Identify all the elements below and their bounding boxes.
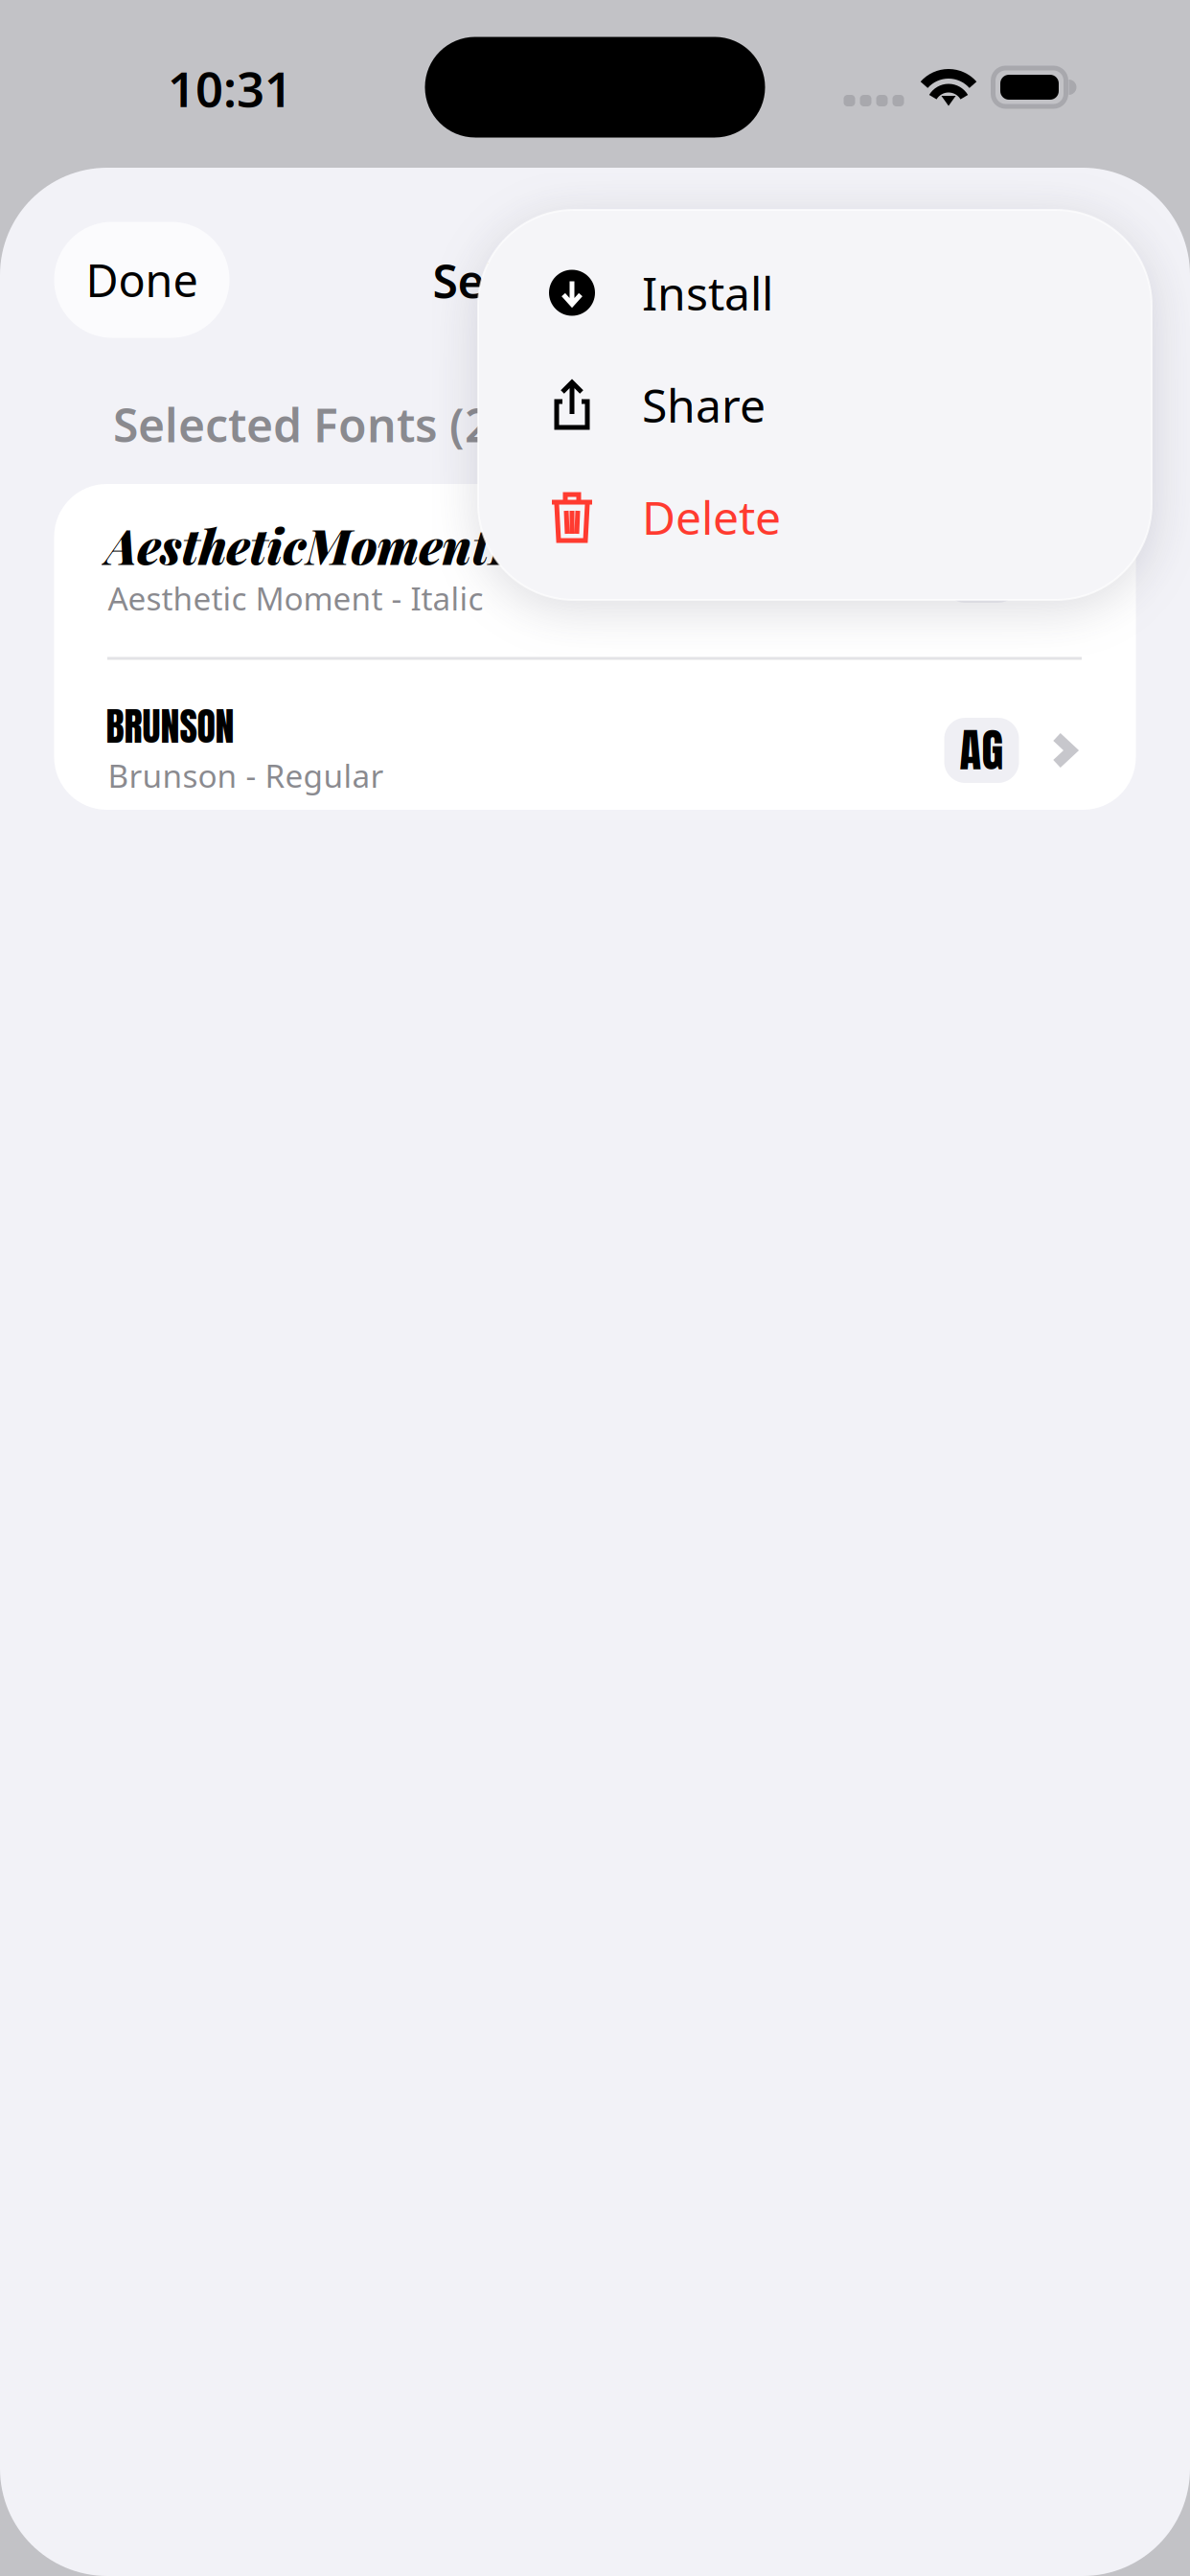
staticText: Done (86, 250, 198, 310)
button[interactable]: BRUNSON (54, 658, 1136, 810)
staticText: Aesthetic Moment - Italic (108, 577, 483, 619)
staticText: AestheticMomentItalic (106, 514, 609, 577)
staticText: AG (960, 537, 1004, 604)
button[interactable]: Done (54, 222, 229, 338)
staticText: Selected Fonts (2) (113, 394, 506, 455)
staticText: 10:31 (168, 56, 292, 120)
button[interactable]: Delete (478, 461, 1152, 573)
staticText: Selected Fonts (433, 250, 757, 311)
staticText: AG (960, 717, 1004, 784)
staticText: Delete (642, 486, 781, 547)
staticText: Install (642, 262, 773, 323)
button[interactable]: AestheticMomentItalic (54, 484, 1136, 658)
button[interactable]: Install (478, 237, 1152, 349)
staticText: BRUNSON (106, 698, 234, 755)
staticText: Share (642, 374, 766, 435)
staticText: Brunson - Regular (108, 754, 384, 797)
button[interactable]: Share (478, 349, 1152, 461)
